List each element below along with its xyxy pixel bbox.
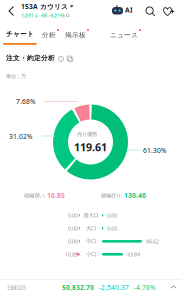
staticText: 0.00: [68, 225, 78, 232]
staticText: 日経225: [7, 284, 26, 291]
button[interactable]: AI assistant: [112, 5, 133, 15]
staticText: 50,832.70: [62, 283, 94, 292]
staticText: 小口: [86, 251, 96, 258]
button[interactable]: Back: [7, 5, 16, 17]
button[interactable]: 分析: [42, 31, 56, 39]
staticText: チャート: [6, 30, 34, 38]
staticText: 31.02%: [9, 132, 33, 141]
button[interactable]: Expand market ticker: [170, 285, 177, 289]
staticText: 0.00: [68, 238, 78, 245]
staticText: 掲示板: [65, 31, 86, 39]
staticText: 積極買い:: [24, 192, 45, 199]
staticText: ニュース: [110, 31, 138, 39]
staticText: -2,540.37: [99, 283, 129, 292]
staticText: 7.68%: [16, 97, 36, 106]
button[interactable]: 掲示板: [65, 31, 86, 39]
button[interactable]: チャート: [6, 30, 34, 38]
staticText: 119.61: [74, 140, 107, 154]
staticText: 大口: [86, 225, 96, 232]
staticText: 超大口: [83, 212, 98, 219]
staticText: 単位：万: [6, 73, 26, 80]
button[interactable]: Share: [67, 56, 73, 62]
staticText: 0.00: [68, 212, 78, 219]
staticText: AI: [125, 6, 133, 14]
staticText: 43.84: [127, 251, 140, 258]
staticText: 1,091↓ -48 -4.21%: [21, 12, 64, 19]
staticText: 10.85: [65, 251, 78, 258]
staticText: 86.62: [146, 238, 159, 245]
staticText: 中口: [86, 238, 96, 245]
staticText: 売り優勢: [77, 131, 97, 138]
button[interactable]: About this chart: [58, 56, 64, 62]
staticText: 130.46: [124, 191, 146, 200]
staticText: 61.30%: [143, 146, 167, 155]
button[interactable]: 153A カウリス: [21, 2, 73, 19]
staticText: 10.85: [47, 191, 65, 200]
staticText: 分析: [42, 31, 56, 39]
staticText: -4.76%: [134, 283, 156, 292]
button[interactable]: ニュース: [110, 31, 138, 39]
button[interactable]: Search: [145, 6, 156, 17]
button[interactable]: Add to watchlist: [163, 6, 175, 17]
staticText: 積極売り:: [101, 192, 122, 199]
staticText: 153A カウリス: [21, 2, 68, 11]
staticText: 注文・約定分析: [6, 54, 55, 62]
staticText: 0.00: [107, 212, 117, 219]
staticText: 0.00: [107, 225, 117, 232]
